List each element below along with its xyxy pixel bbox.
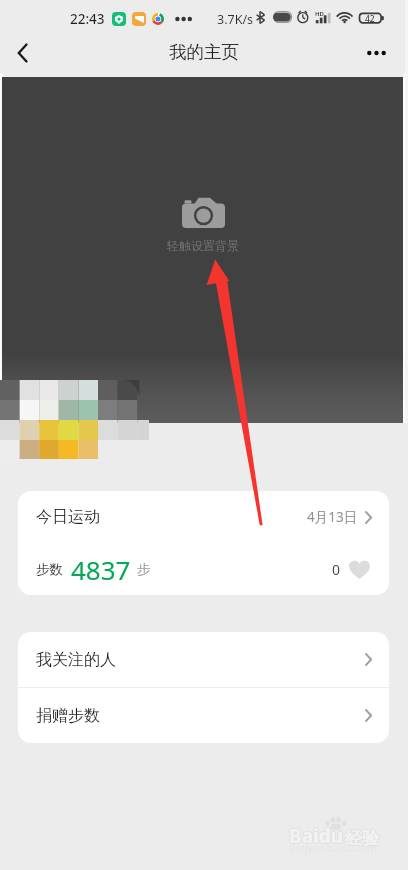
button[interactable]: 捐赠步数 xyxy=(18,688,389,743)
staticText: 我关注的人 xyxy=(36,650,116,670)
staticText: 42 xyxy=(365,13,375,25)
staticText: jingyan.baidu.com xyxy=(290,841,377,855)
staticText: 3.7K/s xyxy=(217,11,254,28)
staticText: 经验 xyxy=(344,828,378,849)
staticText: 22:43 xyxy=(70,10,105,28)
staticText: 轻触设置背景 xyxy=(167,238,239,253)
staticText: 经验 xyxy=(345,829,379,850)
staticText: 捐赠步数 xyxy=(36,706,100,726)
button[interactable]: 今日运动 xyxy=(18,491,389,543)
staticText: Baidu xyxy=(288,823,343,849)
staticText: Baidu xyxy=(289,824,344,850)
staticText: 我的主页 xyxy=(169,41,239,63)
staticText: 4月13日 xyxy=(307,508,358,526)
staticText: 经验 xyxy=(345,827,379,848)
staticText: HD xyxy=(315,10,324,18)
button[interactable]: Back xyxy=(0,31,44,75)
button[interactable]: Like xyxy=(347,557,371,581)
staticText: 经验 xyxy=(346,828,380,849)
button[interactable]: More options xyxy=(354,31,398,75)
staticText: Baidu xyxy=(289,822,344,848)
button[interactable]: 轻触设置背景 xyxy=(2,77,403,423)
staticText: 步数 xyxy=(36,561,63,578)
button[interactable]: 我关注的人 xyxy=(18,632,389,687)
staticText: Baidu xyxy=(290,823,345,849)
staticText: 经验 xyxy=(345,828,379,849)
staticText: 步 xyxy=(137,561,151,578)
staticText: 4837 xyxy=(71,552,131,587)
staticText: Baidu xyxy=(289,823,344,849)
staticText: 今日运动 xyxy=(36,507,100,527)
staticText: 0 xyxy=(332,560,341,579)
